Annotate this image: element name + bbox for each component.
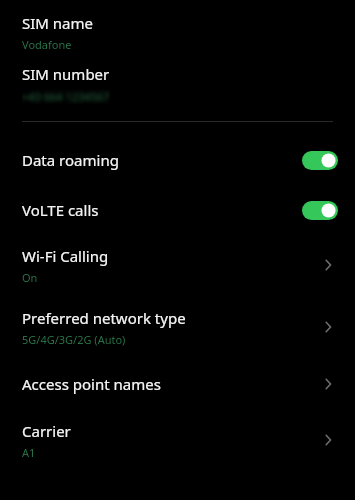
button[interactable]: VoLTE calls [0,189,355,231]
button[interactable]: SIM number [0,58,355,110]
staticText: SIM name [22,13,93,33]
staticText: A1 [22,445,36,460]
button[interactable]: Access point names [0,363,355,405]
button[interactable]: Carrier [0,414,355,466]
staticText: VoLTE calls [22,200,99,220]
staticText: Vodafone [22,37,72,52]
staticText: Data roaming [22,150,119,170]
staticText: +43 664 1234567 [22,89,110,104]
button[interactable]: VoLTE calls toggle [301,197,339,224]
staticText: On [22,270,38,285]
staticText: Wi-Fi Calling [22,246,109,266]
button[interactable]: Data roaming [0,139,355,181]
button[interactable]: Data roaming toggle [301,147,339,174]
staticText: Carrier [22,421,71,441]
staticText: Access point names [22,374,161,394]
button[interactable]: Wi-Fi Calling [0,239,355,291]
staticText: 5G/4G/3G/2G (Auto) [22,332,126,347]
button[interactable]: SIM name [0,6,355,58]
staticText: SIM number [22,64,110,84]
staticText: Preferred network type [22,308,186,328]
button[interactable]: Preferred network type [0,301,355,353]
